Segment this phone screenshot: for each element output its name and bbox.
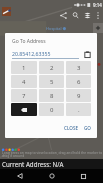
button[interactable]: 3: [66, 61, 91, 74]
button[interactable]: 9: [66, 89, 91, 102]
button[interactable]: Backspace: [11, 103, 37, 116]
button[interactable]: 1: [11, 61, 37, 74]
staticText: .: [78, 106, 80, 114]
staticText: 1: [22, 64, 26, 72]
button[interactable]: 0: [39, 103, 64, 116]
button[interactable]: Recent apps: [71, 169, 95, 183]
button[interactable]: Map layers: [81, 9, 93, 22]
button[interactable]: 5: [39, 75, 64, 88]
staticText: Current Address: N/A: [2, 160, 64, 168]
staticText: GO: [84, 125, 91, 131]
staticText: 20.85412,63355: [12, 50, 51, 57]
button[interactable]: GO: [81, 123, 94, 133]
button[interactable]: 8: [39, 89, 64, 102]
button[interactable]: Search: [69, 9, 81, 22]
button[interactable]: Back: [8, 169, 32, 183]
button[interactable]: 2: [39, 61, 64, 74]
staticText: 9:14: [93, 2, 102, 8]
button[interactable]: CLOSE: [61, 123, 81, 133]
staticText: 6: [77, 78, 81, 86]
staticText: 0: [50, 106, 54, 114]
staticText: Long press on map to view location, drag…: [2, 150, 103, 158]
staticText: 3: [77, 64, 81, 72]
staticText: Hospital: [46, 26, 62, 31]
button[interactable]: Home: [40, 169, 64, 183]
button[interactable]: 6: [66, 75, 91, 88]
staticText: 2: [50, 64, 54, 72]
staticText: CLOSE: [64, 125, 78, 131]
staticText: 4: [22, 78, 26, 86]
staticText: 8: [50, 92, 54, 100]
staticText: Go To Address: [12, 38, 46, 45]
staticText: 7: [22, 92, 26, 100]
button[interactable]: More options: [93, 9, 102, 22]
button[interactable]: Paste from clipboard: [82, 49, 92, 59]
button[interactable]: Share: [57, 9, 69, 22]
staticText: 5: [50, 78, 54, 86]
staticText: 9: [77, 92, 81, 100]
button[interactable]: Compass: [93, 23, 103, 33]
button[interactable]: 4: [11, 75, 37, 88]
button[interactable]: 7: [11, 89, 37, 102]
